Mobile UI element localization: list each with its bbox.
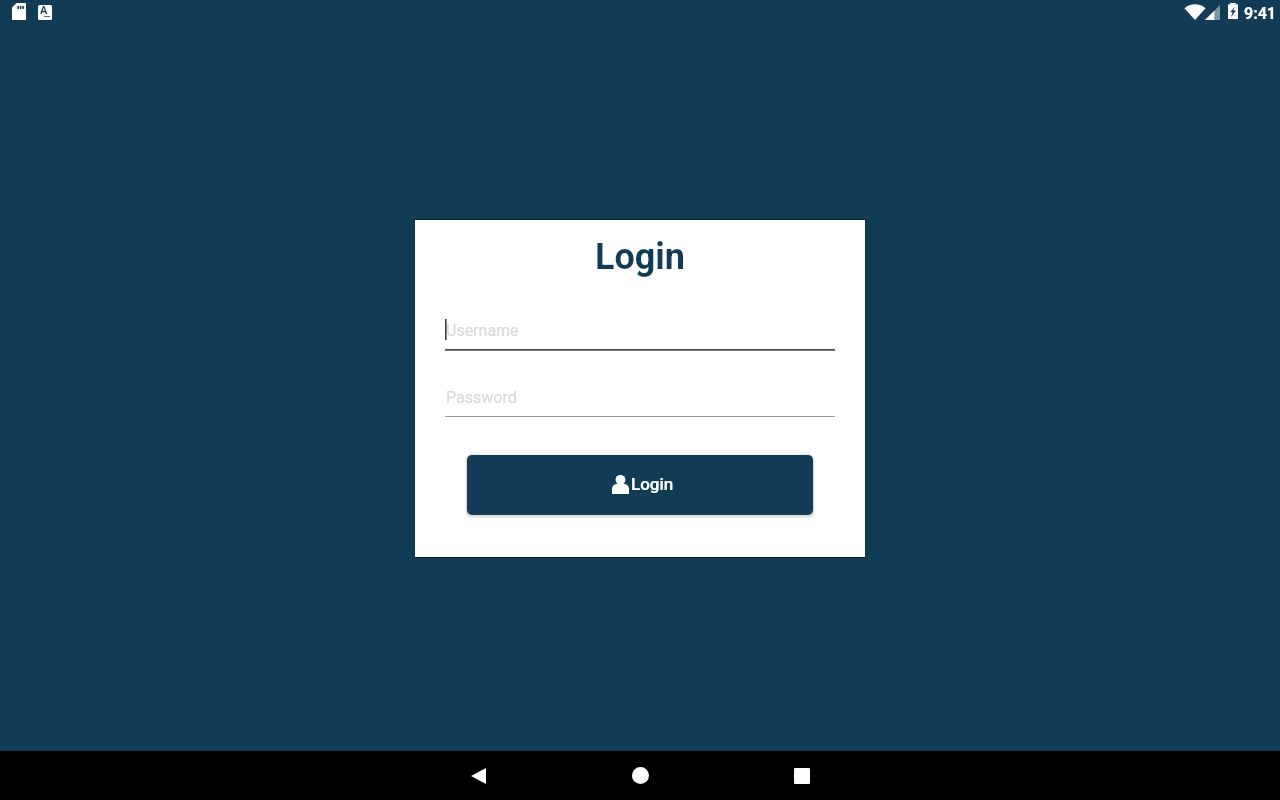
staticText: Login bbox=[415, 236, 865, 278]
button[interactable]: Login bbox=[467, 455, 813, 515]
staticText: A bbox=[40, 4, 48, 17]
staticText: 9:41 bbox=[1244, 4, 1277, 23]
staticText: Password bbox=[446, 388, 517, 407]
button[interactable]: Back bbox=[430, 751, 526, 800]
staticText: Username bbox=[446, 321, 519, 340]
button[interactable]: Password bbox=[445, 387, 835, 418]
button[interactable]: Recent apps bbox=[754, 751, 850, 800]
button[interactable]: Username bbox=[445, 320, 835, 351]
staticText: Login bbox=[631, 474, 674, 494]
button[interactable]: Home bbox=[592, 751, 688, 800]
